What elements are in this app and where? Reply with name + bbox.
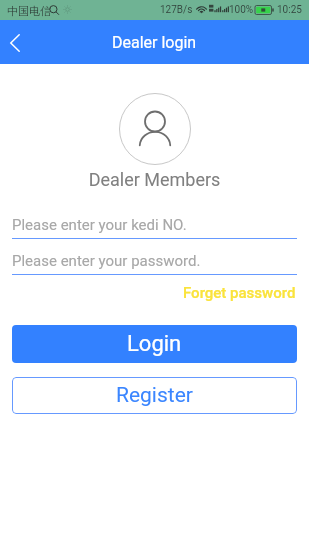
staticText: Forget password — [183, 284, 296, 302]
staticText: Please enter your kedi NO. — [12, 216, 187, 234]
button[interactable]: Login — [12, 325, 297, 363]
button[interactable]: Back — [0, 20, 34, 64]
staticText: 127B/s — [160, 4, 193, 16]
staticText: 中国电信 — [7, 4, 51, 18]
staticText: 100% — [229, 4, 254, 16]
staticText: Dealer login — [112, 33, 197, 52]
staticText: Login — [127, 331, 182, 357]
button[interactable]: Forget password — [173, 283, 309, 306]
button[interactable]: Register — [12, 377, 297, 414]
staticText: Please enter your password. — [12, 252, 201, 270]
staticText: Register — [116, 383, 193, 408]
staticText: Dealer Members — [0, 169, 309, 190]
staticText: 10:25 — [277, 4, 302, 16]
